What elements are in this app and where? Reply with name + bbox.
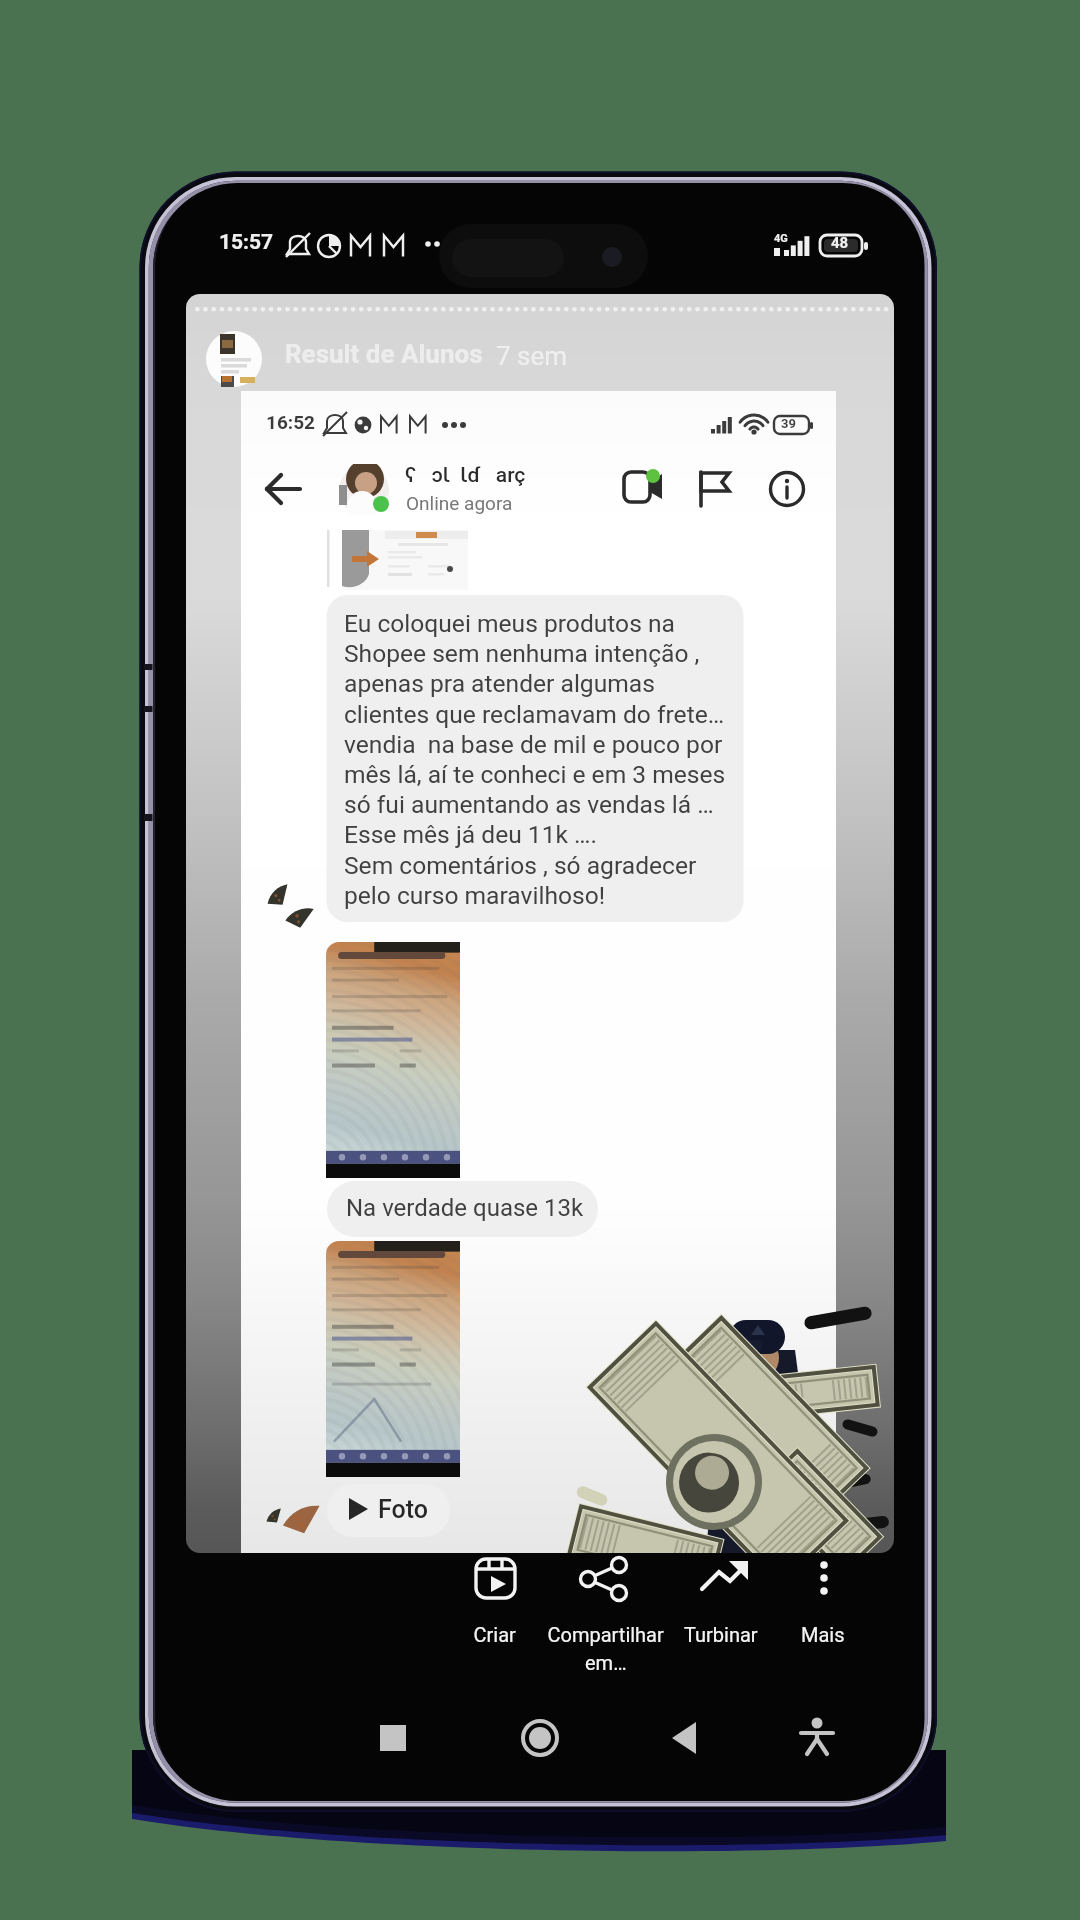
button[interactable]: Back: [652, 1706, 716, 1770]
button[interactable]: Story photo: [186, 396, 896, 1553]
button[interactable]: Video call: [610, 460, 676, 518]
button[interactable]: Open profile: [330, 460, 560, 520]
button[interactable]: Home: [508, 1706, 572, 1770]
button[interactable]: Report: [686, 460, 744, 518]
button[interactable]: Turbinar: [678, 1552, 766, 1656]
button[interactable]: Compartilhar em…: [540, 1552, 672, 1656]
button[interactable]: Accessibility: [786, 1706, 850, 1770]
button[interactable]: Back: [256, 462, 314, 518]
button[interactable]: Recent apps: [360, 1706, 424, 1770]
button[interactable]: Conversation info: [760, 460, 816, 518]
button[interactable]: Criar: [455, 1552, 537, 1656]
button[interactable]: Mais: [788, 1552, 858, 1656]
button[interactable]: Result de Alunos, 7 sem: [196, 322, 586, 396]
